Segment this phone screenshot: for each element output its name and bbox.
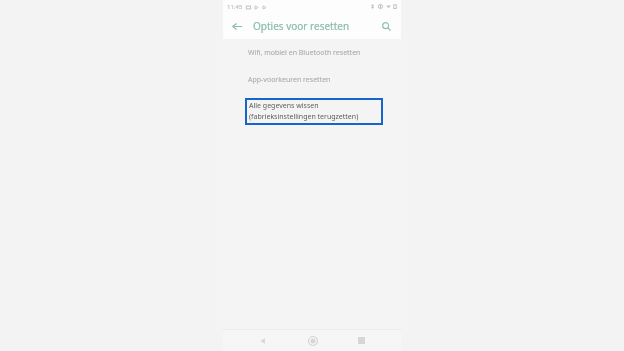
button[interactable]: Terug: [252, 330, 273, 351]
staticText: App-voorkeuren resetten: [248, 75, 331, 85]
button[interactable]: Terug: [228, 17, 246, 35]
staticText: 11:45: [227, 3, 243, 11]
button[interactable]: Recente apps: [351, 330, 372, 351]
button[interactable]: App-voorkeuren resetten: [223, 72, 401, 87]
button[interactable]: Home: [302, 330, 323, 351]
button[interactable]: Zoeken: [377, 17, 395, 35]
staticText: Wifi, mobiel en Bluetooth resetten: [248, 48, 361, 58]
staticText: Opties voor resetten: [253, 19, 350, 33]
staticText: (fabrieksinstellingen terugzetten): [249, 112, 359, 122]
button[interactable]: Wifi, mobiel en Bluetooth resetten: [223, 45, 401, 60]
staticText: Alle gegevens wissen: [249, 101, 319, 111]
button[interactable]: Alle gegevens wissen: [245, 98, 383, 125]
